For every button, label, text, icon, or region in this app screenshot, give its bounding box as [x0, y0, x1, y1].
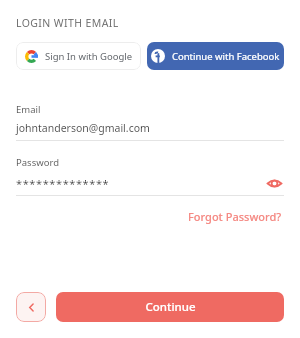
staticText: johntanderson@gmail.com [16, 121, 150, 135]
button[interactable]: Show password [264, 173, 284, 193]
staticText: ************** [16, 176, 264, 191]
button[interactable]: Back [16, 292, 46, 322]
button[interactable]: Forgot Password? [186, 206, 284, 227]
staticText: Password [16, 156, 59, 169]
button[interactable]: Continue [56, 292, 284, 322]
staticText: Continue [145, 299, 196, 315]
staticText: Continue with Facebook [172, 50, 280, 63]
button[interactable]: Continue with Facebook [147, 42, 284, 70]
staticText: Email [16, 103, 41, 116]
staticText: Forgot Password? [188, 209, 282, 224]
button[interactable]: Sign In with Google [16, 42, 141, 70]
staticText: Sign In with Google [45, 50, 133, 63]
staticText: LOGIN WITH EMAIL [16, 16, 119, 30]
